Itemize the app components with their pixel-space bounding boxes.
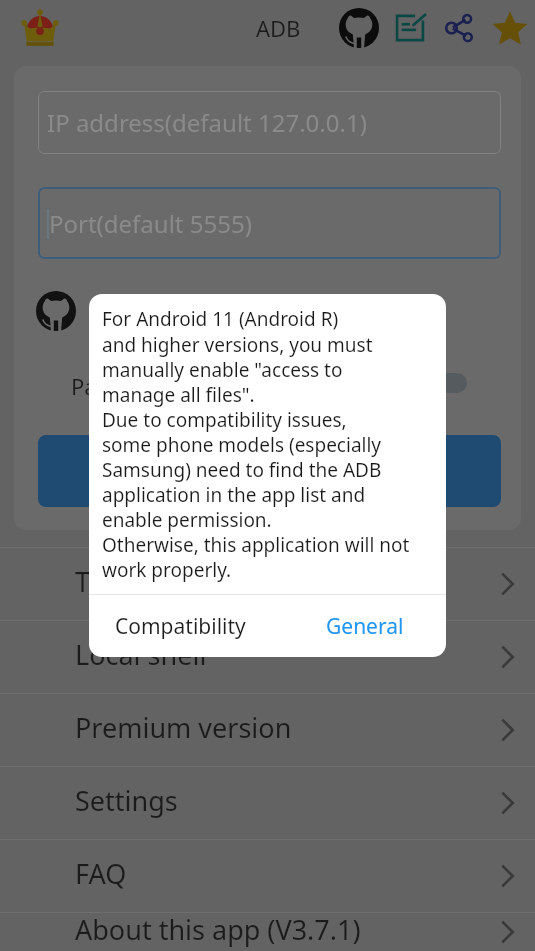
- button[interactable]: Toolbox: [0, 548, 535, 620]
- button[interactable]: Sh: [0, 621, 535, 693]
- button[interactable]: Port(default 5555): [38, 187, 501, 259]
- button[interactable]: Premium: [14, 2, 66, 54]
- staticText: IP address(default 127.0.0.1): [47, 106, 367, 139]
- button[interactable]: Compatibility: [105, 604, 256, 649]
- button[interactable]: FAQ: [0, 840, 535, 912]
- button[interactable]: Rate: [485, 3, 535, 53]
- staticText: FAQ: [75, 855, 127, 892]
- staticText: ADB: [256, 13, 301, 43]
- staticText: Local shell: [75, 636, 207, 673]
- staticText: Port(default 5555): [49, 207, 252, 240]
- staticText: Compatibility: [115, 612, 246, 641]
- button[interactable]: [38, 435, 501, 507]
- staticText: General: [326, 612, 404, 641]
- button[interactable]: General: [316, 604, 414, 649]
- button[interactable]: About this app (V3.7.1): [0, 913, 535, 951]
- button[interactable]: Share: [435, 3, 485, 53]
- button[interactable]: Settings: [0, 767, 535, 839]
- staticText: About this app (V3.7.1): [75, 911, 361, 948]
- button[interactable]: IP address(default 127.0.0.1): [38, 91, 501, 154]
- staticText: Premium version: [75, 709, 292, 746]
- button[interactable]: Feedback: [385, 3, 435, 53]
- staticText: For Android 11 (Android R) and higher ve…: [102, 306, 438, 582]
- button[interactable]: Premium version: [0, 694, 535, 766]
- staticText: Settings: [75, 782, 178, 819]
- button[interactable]: Pair device toggle: [423, 373, 467, 393]
- staticText: Toolbox: [75, 563, 175, 600]
- staticText: Pair device: [71, 371, 183, 401]
- button[interactable]: GitHub: [333, 2, 385, 54]
